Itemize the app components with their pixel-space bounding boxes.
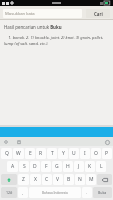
- staticText: 12#: [6, 190, 13, 195]
- button[interactable]: H: [63, 161, 73, 172]
- staticText: B: [67, 176, 71, 183]
- staticText: U: [72, 150, 76, 157]
- button[interactable]: J: [74, 161, 84, 172]
- staticText: K: [88, 163, 92, 170]
- button[interactable]: Cari: [86, 9, 110, 18]
- button[interactable]: Backspace: [97, 174, 112, 185]
- staticText: P: [105, 150, 109, 157]
- button[interactable]: L: [96, 161, 106, 172]
- button[interactable]: R: [36, 148, 46, 159]
- button[interactable]: N: [75, 174, 85, 185]
- staticText: W: [16, 150, 21, 157]
- button[interactable]: U: [69, 148, 79, 159]
- staticText: V: [56, 176, 60, 183]
- staticText: E: [29, 150, 32, 157]
- staticText: N: [78, 176, 82, 183]
- button[interactable]: P: [102, 148, 112, 159]
- staticText: L: [100, 163, 103, 170]
- staticText: Masukkan kata: [5, 11, 35, 17]
- button[interactable]: Shift: [1, 174, 17, 185]
- staticText: I: [84, 150, 86, 157]
- button[interactable]: 12#: [1, 187, 17, 198]
- staticText: C: [45, 176, 49, 183]
- staticText: Y: [62, 150, 65, 157]
- staticText: O: [94, 150, 98, 157]
- staticText: M: [89, 176, 94, 183]
- staticText: S: [23, 163, 26, 170]
- button[interactable]: V: [53, 174, 63, 185]
- staticText: F: [45, 163, 48, 170]
- button[interactable]: Y: [58, 148, 68, 159]
- button[interactable]: M: [86, 174, 96, 185]
- button[interactable]: Delete: [16, 139, 22, 145]
- button[interactable]: Voice input: [3, 139, 9, 145]
- staticText: H: [66, 163, 70, 170]
- staticText: J: [78, 163, 80, 170]
- staticText: Z: [22, 176, 25, 183]
- staticText: Hasil pencarian untuk Buku: [4, 24, 62, 30]
- staticText: Buka: [98, 190, 107, 195]
- button[interactable]: ,: [18, 187, 28, 198]
- staticText: Bahasa Indonesia: [42, 191, 68, 195]
- staticText: T: [51, 150, 54, 157]
- button[interactable]: T: [47, 148, 57, 159]
- button[interactable]: Q: [1, 148, 12, 159]
- button[interactable]: I: [80, 148, 90, 159]
- button[interactable]: C: [42, 174, 52, 185]
- staticText: D: [33, 163, 37, 170]
- button[interactable]: E: [25, 148, 35, 159]
- button[interactable]: G: [52, 161, 62, 172]
- staticText: 1. bonok. 2. 1) knuckle, joint. 2) knot.…: [4, 35, 110, 47]
- staticText: ,: [22, 190, 24, 195]
- button[interactable]: Z: [18, 174, 29, 185]
- button[interactable]: B: [64, 174, 74, 185]
- button[interactable]: S: [19, 161, 29, 172]
- staticText: Cari: [94, 11, 103, 17]
- staticText: A: [11, 163, 15, 170]
- staticText: X: [34, 176, 37, 183]
- button[interactable]: Masukkan kata: [3, 9, 82, 18]
- staticText: R: [39, 150, 43, 157]
- button[interactable]: K: [85, 161, 95, 172]
- button[interactable]: X: [30, 174, 41, 185]
- button[interactable]: W: [13, 148, 24, 159]
- button[interactable]: D: [30, 161, 40, 172]
- button[interactable]: Buka: [93, 187, 112, 198]
- button[interactable]: Space, Bahasa Indonesia: [29, 187, 81, 198]
- staticText: .: [86, 190, 88, 195]
- staticText: Q: [5, 150, 9, 157]
- staticText: G: [55, 163, 59, 170]
- button[interactable]: Emoji: [104, 139, 110, 145]
- button[interactable]: O: [91, 148, 101, 159]
- button[interactable]: A: [7, 161, 18, 172]
- button[interactable]: F: [41, 161, 51, 172]
